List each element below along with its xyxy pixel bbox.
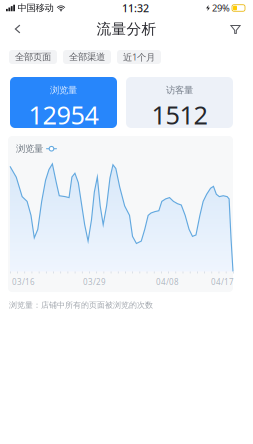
staticText: 03/29 — [83, 276, 106, 287]
staticText: 浏览量 — [16, 143, 43, 154]
button[interactable]: 近1个月 — [117, 50, 161, 64]
button[interactable]: 全部渠道 — [63, 50, 111, 64]
staticText: 11:32 — [122, 1, 149, 15]
staticText: 近1个月 — [123, 51, 155, 63]
staticText: 访客量 — [166, 84, 193, 96]
staticText: 全部渠道 — [69, 51, 105, 63]
button[interactable]: 访客量 — [126, 77, 233, 128]
staticText: 04/08 — [156, 276, 179, 287]
staticText: 浏览量：店铺中所有的页面被浏览的次数 — [9, 300, 153, 310]
button[interactable]: 返回 — [4, 16, 31, 41]
staticText: 04/17 — [211, 276, 234, 287]
staticText: 中国移动 — [17, 2, 53, 14]
staticText: 29% — [212, 2, 230, 14]
staticText: 1512 — [151, 98, 207, 131]
staticText: 全部页面 — [15, 51, 51, 63]
button[interactable]: 浏览量 — [10, 77, 117, 128]
staticText: 03/16 — [12, 276, 35, 287]
button[interactable]: 全部页面 — [9, 50, 57, 64]
button[interactable]: 筛选 — [222, 16, 249, 41]
staticText: 流量分析 — [96, 20, 156, 38]
staticText: 12954 — [28, 98, 98, 131]
staticText: 浏览量 — [50, 84, 77, 96]
